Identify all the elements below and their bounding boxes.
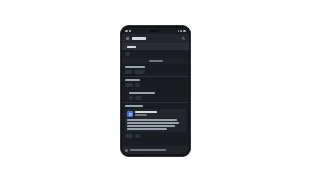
button[interactable]: Option bbox=[125, 70, 132, 74]
button[interactable]: Option bbox=[125, 52, 130, 56]
button[interactable]: Search bbox=[181, 36, 186, 41]
button[interactable] bbox=[122, 43, 189, 50]
button[interactable]: Option bbox=[129, 96, 133, 100]
button[interactable]: Option bbox=[135, 96, 142, 100]
button[interactable]: Option bbox=[135, 83, 140, 87]
button[interactable]: Menu bbox=[125, 36, 130, 41]
button[interactable]: Option bbox=[125, 134, 133, 138]
button[interactable]: Option bbox=[125, 83, 133, 87]
button[interactable]: Option bbox=[135, 134, 140, 138]
button[interactable] bbox=[122, 146, 189, 154]
button[interactable]: Option bbox=[134, 70, 145, 74]
button[interactable] bbox=[125, 109, 186, 132]
